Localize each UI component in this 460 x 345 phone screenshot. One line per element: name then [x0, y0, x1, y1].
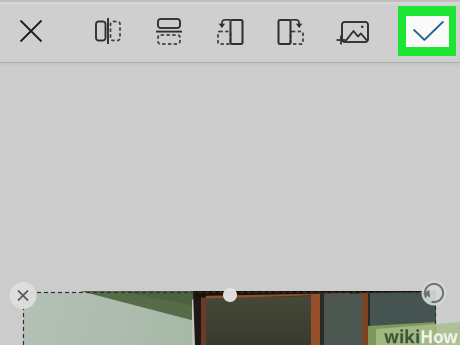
- button[interactable]: Close: [8, 0, 54, 62]
- button[interactable]: Add photo: [329, 0, 375, 62]
- staticText: How: [420, 325, 458, 345]
- button[interactable]: Flip horizontal: [85, 0, 131, 62]
- staticText: wiki: [384, 325, 420, 345]
- button[interactable]: Done: [398, 6, 456, 56]
- button[interactable]: Rotate left: [207, 0, 253, 62]
- button[interactable]: Rotate right: [268, 0, 314, 62]
- button[interactable]: Remove photo: [9, 282, 36, 309]
- button[interactable]: Flip vertical: [146, 0, 192, 62]
- button[interactable]: Rotate photo: [421, 280, 447, 306]
